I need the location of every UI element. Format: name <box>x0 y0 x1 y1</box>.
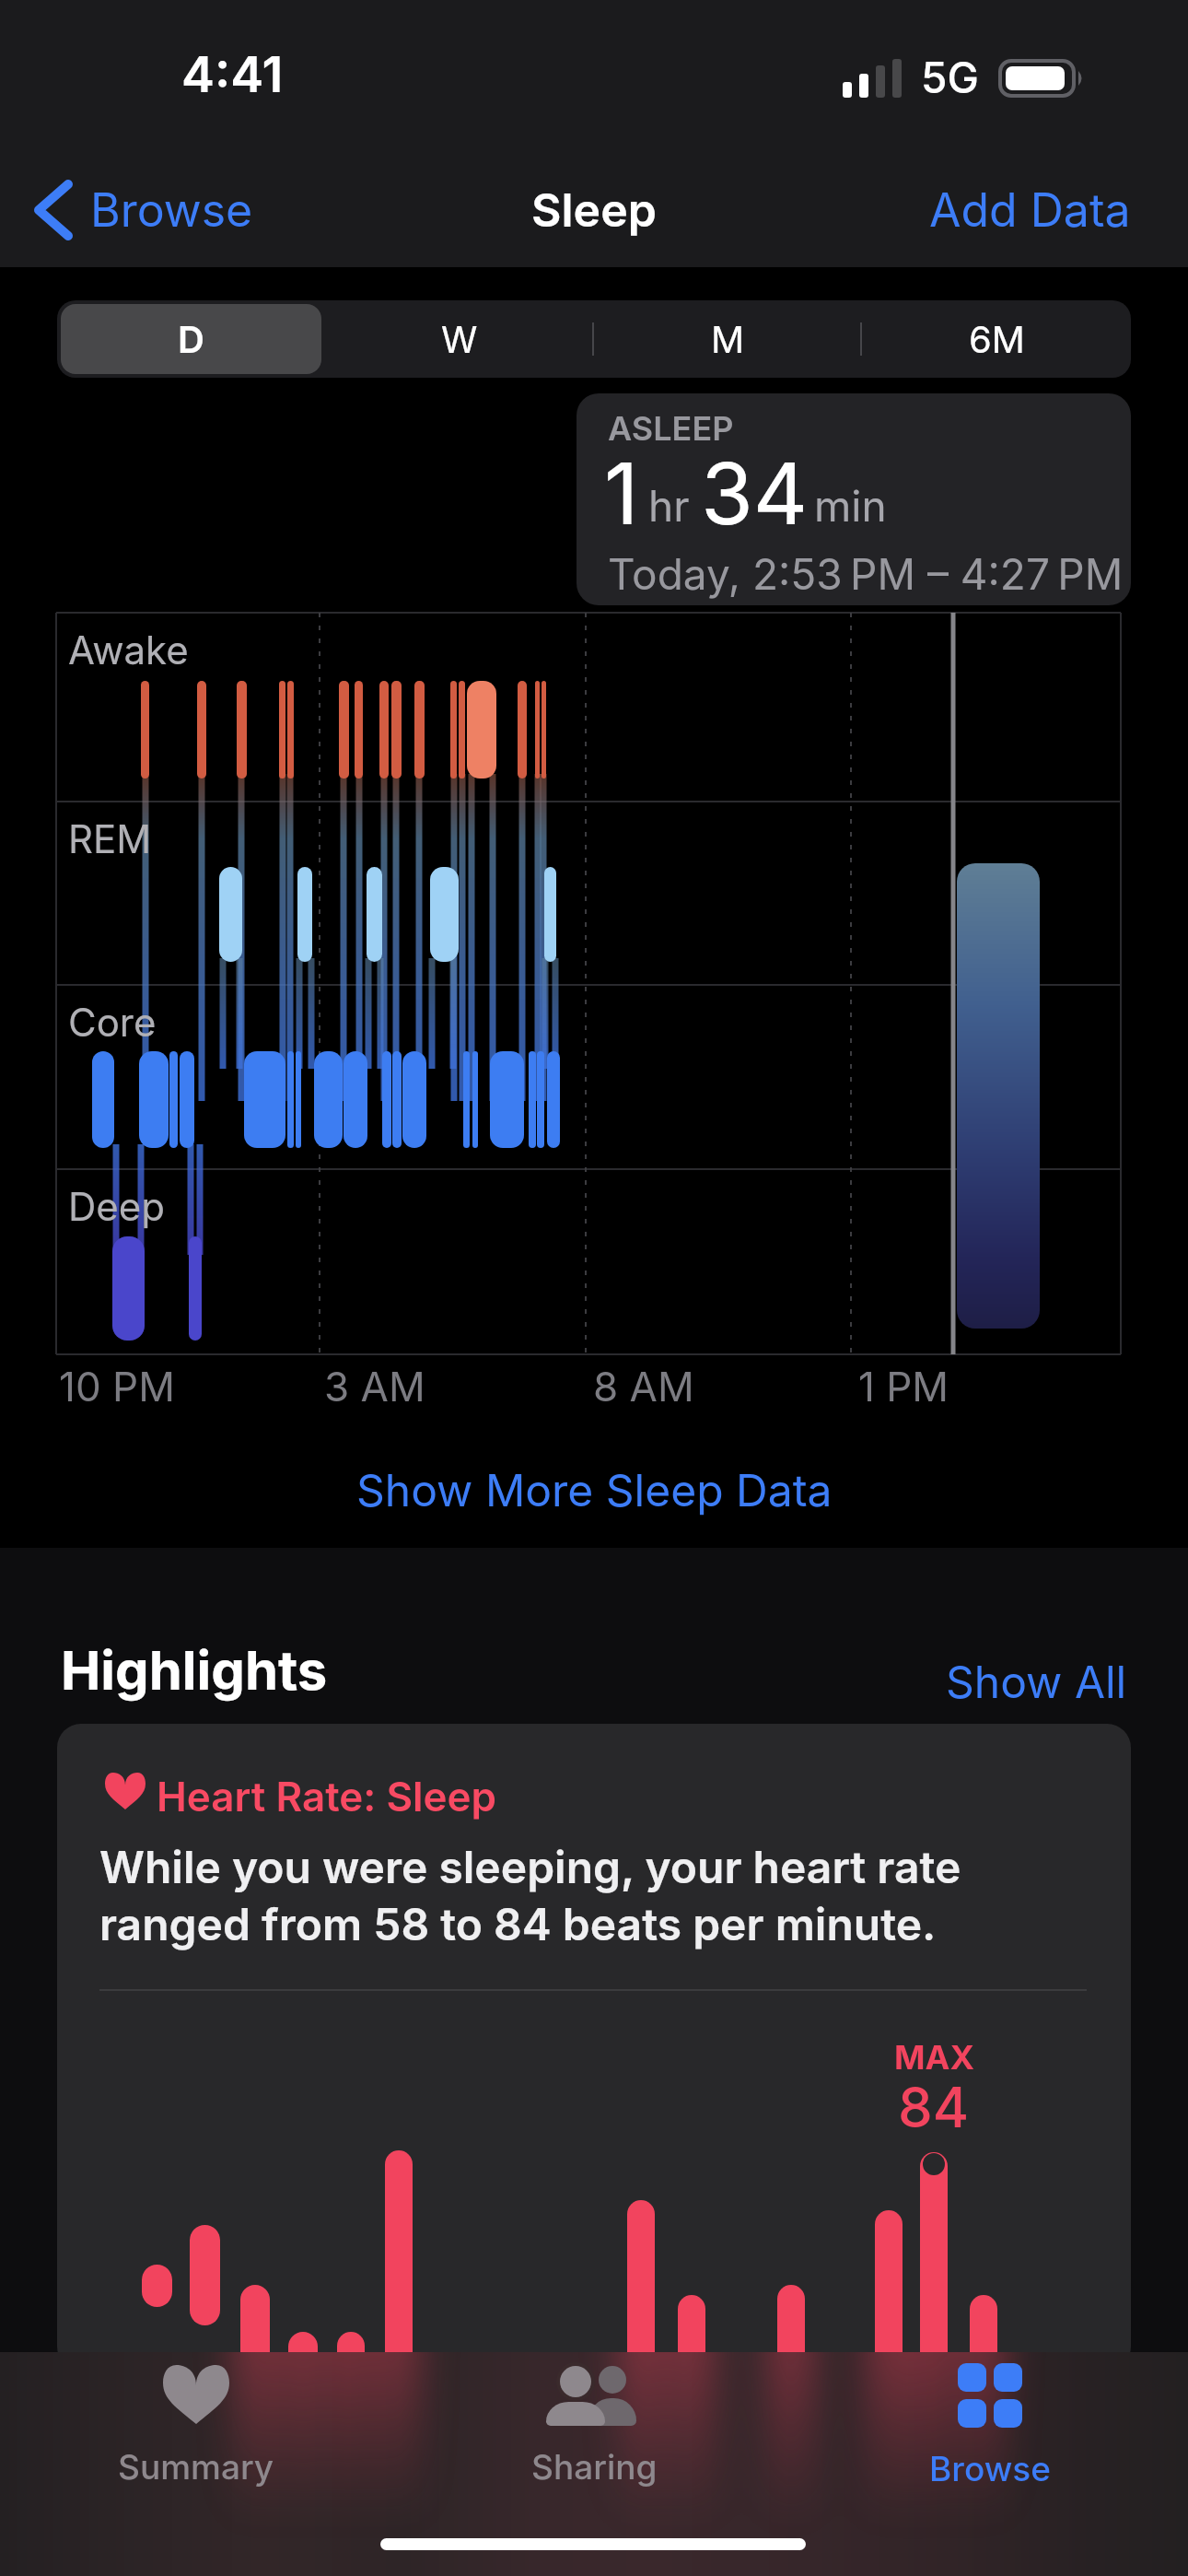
staticText: 4:41 <box>181 44 284 104</box>
staticText: Today, 2:53 PM – 4:27 PM <box>608 548 1124 600</box>
staticText: 34 <box>701 442 809 544</box>
staticText: Deep <box>68 1183 165 1230</box>
button[interactable]: Sharing <box>507 2365 681 2512</box>
staticText: 3 AM <box>324 1362 425 1411</box>
staticText: Sleep <box>531 182 657 238</box>
staticText: Awake <box>68 626 189 673</box>
button[interactable]: Show All <box>0 1655 1127 1708</box>
staticText: Heart Rate: Sleep <box>157 1772 497 1821</box>
button[interactable]: Browse <box>0 181 251 239</box>
staticText: Highlights <box>61 1638 328 1703</box>
staticText: M <box>711 317 745 361</box>
staticText: While you were sleeping, your heart rate… <box>99 1840 961 1950</box>
button[interactable]: Summary <box>109 2365 284 2512</box>
button[interactable]: D <box>61 304 321 374</box>
staticText: 6M <box>969 317 1025 361</box>
staticText: 1 PM <box>858 1362 949 1411</box>
staticText: min <box>814 480 887 532</box>
button[interactable]: Heart Rate: Sleep <box>57 1724 1131 2371</box>
staticText: hr <box>648 480 690 532</box>
staticText: REM <box>68 815 152 862</box>
staticText: Add Data <box>929 182 1131 238</box>
staticText: 5G <box>921 52 979 103</box>
button[interactable]: M <box>593 300 862 378</box>
button[interactable]: Show More Sleep Data <box>0 1463 1188 1516</box>
staticText: W <box>441 317 478 361</box>
button[interactable]: Add Data <box>929 182 1131 238</box>
staticText: Browse <box>90 182 253 238</box>
staticText: 84 <box>898 2074 970 2141</box>
staticText: MAX <box>894 2037 974 2078</box>
staticText: 1 <box>604 442 639 544</box>
staticText: Sharing <box>531 2446 658 2488</box>
button[interactable]: Browse <box>903 2365 1077 2512</box>
staticText: ASLEEP <box>608 408 734 449</box>
staticText: Show More Sleep Data <box>356 1463 833 1516</box>
button[interactable]: 6M <box>862 300 1131 378</box>
staticText: Browse <box>929 2448 1051 2489</box>
staticText: 8 AM <box>593 1362 694 1411</box>
staticText: Summary <box>118 2446 274 2488</box>
staticText: Show All <box>946 1655 1127 1708</box>
button[interactable]: W <box>325 300 593 378</box>
staticText: 10 PM <box>59 1362 175 1411</box>
staticText: Core <box>68 999 157 1046</box>
staticText: D <box>178 317 204 361</box>
